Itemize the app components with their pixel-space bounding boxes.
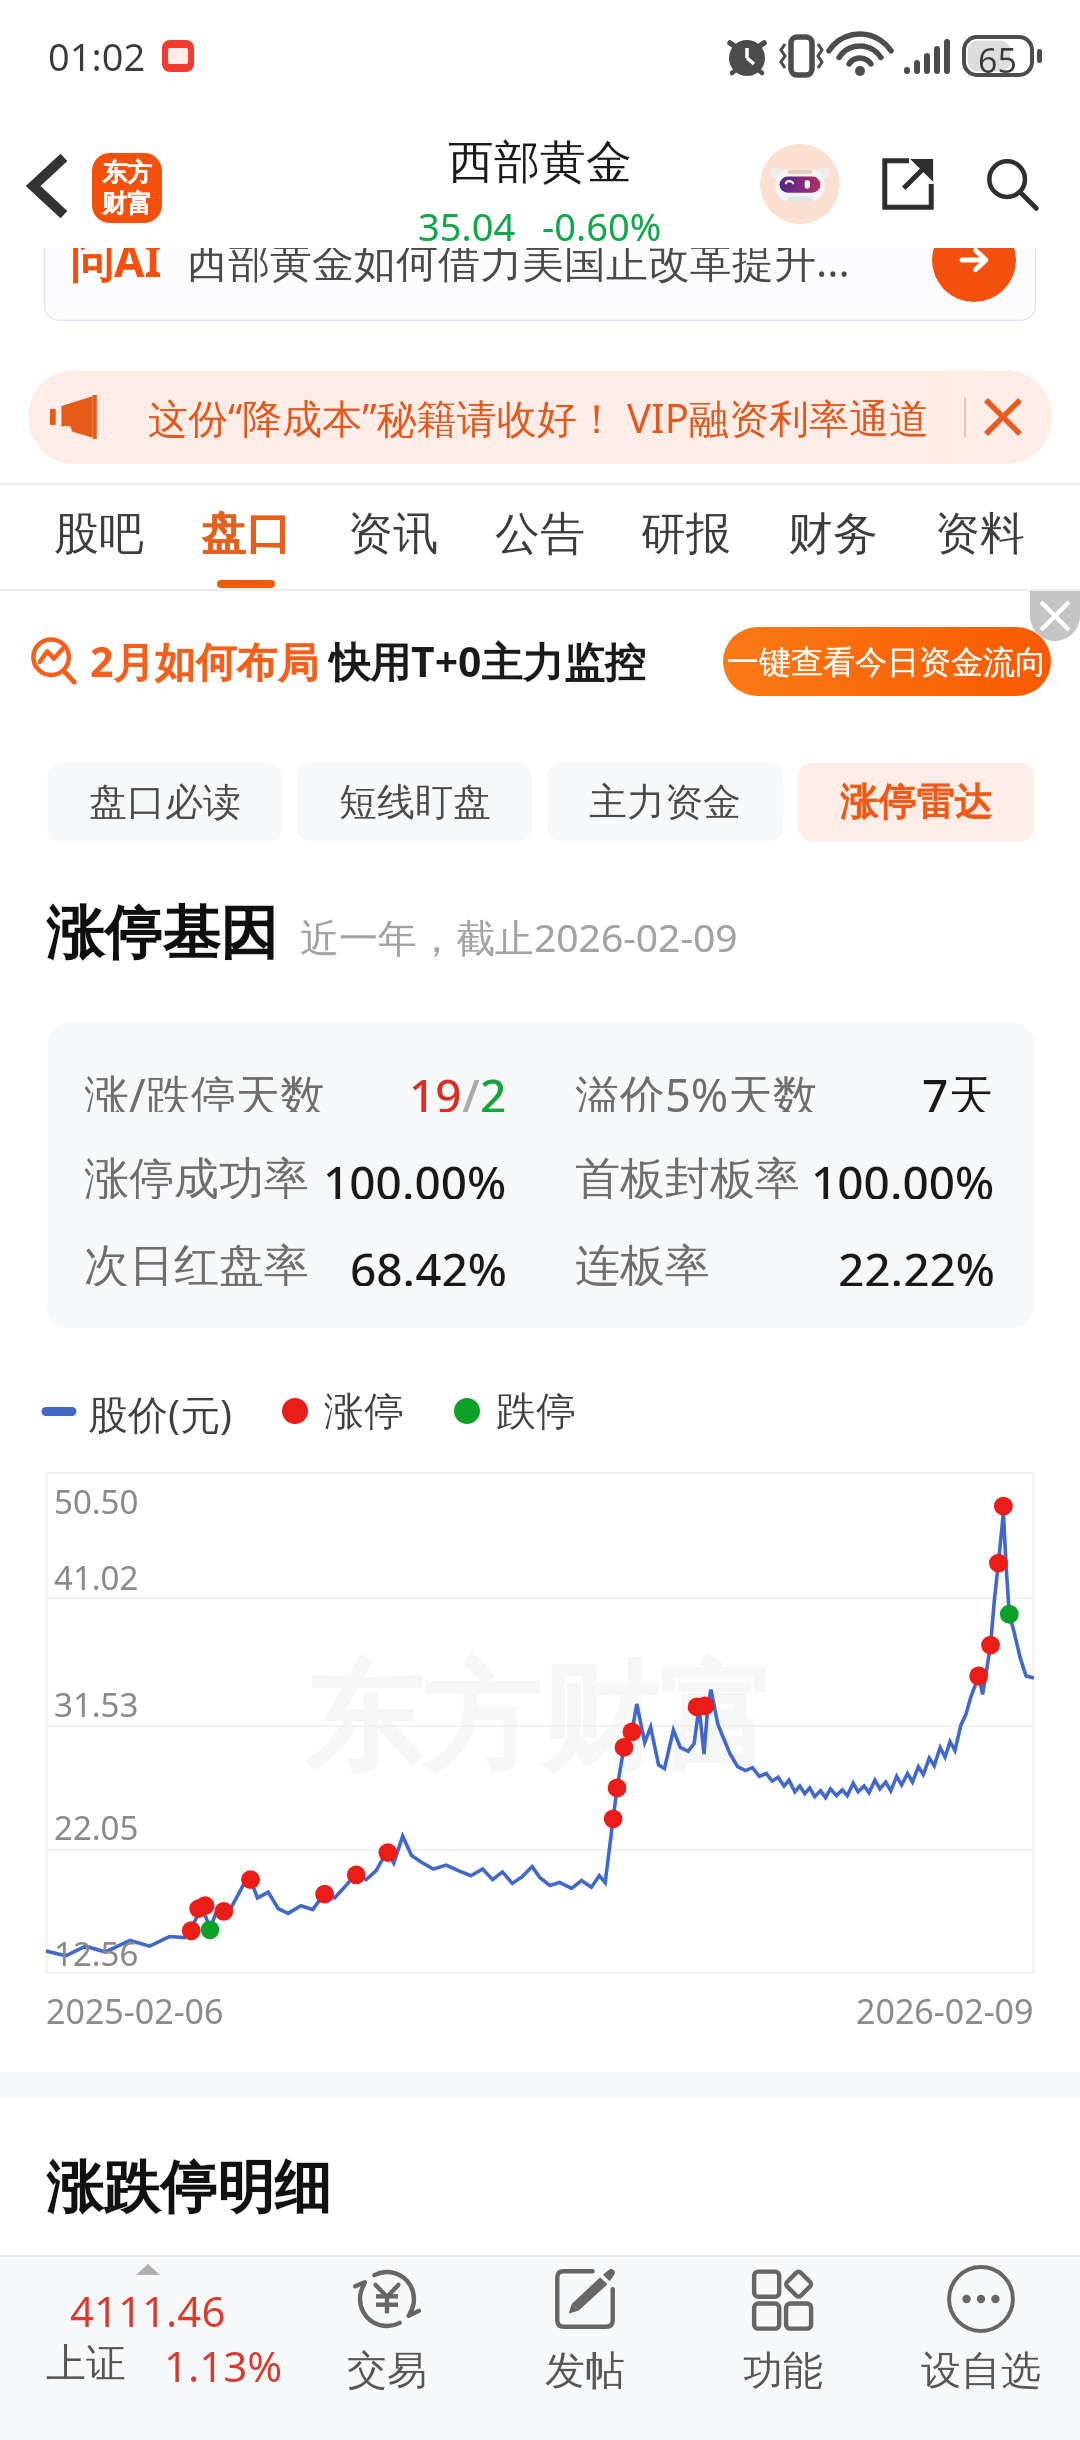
staticText: 01:02 bbox=[48, 30, 146, 82]
staticText: 2025-02-06 bbox=[46, 1988, 224, 2034]
button[interactable]: 资料 bbox=[935, 483, 1025, 591]
staticText: 主力资金 bbox=[589, 778, 741, 826]
staticText: 4111.46 bbox=[70, 2282, 226, 2339]
staticText: 溢价5%天数 bbox=[575, 1064, 819, 1112]
button[interactable]: 这份“降成本”秘籍请收好！ VIP融资利率通道 bbox=[28, 370, 1052, 464]
button[interactable]: Close banner bbox=[976, 390, 1030, 444]
button[interactable]: AI assistant bbox=[760, 144, 840, 224]
button[interactable]: 设自选 bbox=[882, 2255, 1080, 2440]
staticText: 41.02 bbox=[54, 1555, 139, 1600]
staticText: 68.42% bbox=[350, 1238, 507, 1286]
button[interactable]: 4111.46 bbox=[0, 2255, 288, 2440]
staticText: 35.04 bbox=[418, 200, 516, 252]
staticText: 50.50 bbox=[54, 1479, 139, 1524]
staticText: 上证 bbox=[46, 2338, 126, 2388]
staticText: 西部黄金 bbox=[448, 134, 632, 192]
staticText: 近一年，截止2026-02-09 bbox=[300, 910, 738, 963]
staticText: 股价(元) bbox=[88, 1386, 232, 1436]
button[interactable]: 股吧 bbox=[54, 483, 144, 591]
staticText: 盘口 bbox=[201, 506, 291, 563]
staticText: 功能 bbox=[743, 2345, 823, 2395]
staticText: 涨/跌停天数 bbox=[84, 1064, 326, 1112]
staticText: 2026-02-09 bbox=[856, 1988, 1034, 2034]
staticText: 连板率 bbox=[575, 1238, 710, 1286]
button[interactable]: 交易 bbox=[288, 2255, 486, 2440]
button[interactable]: 盘口必读 bbox=[47, 763, 282, 841]
staticText: 财富 bbox=[102, 188, 152, 219]
button[interactable]: 问AI bbox=[44, 199, 1036, 321]
staticText: 7天 bbox=[922, 1064, 995, 1112]
staticText: 资料 bbox=[935, 506, 1025, 563]
staticText: 1.13% bbox=[164, 2337, 283, 2394]
staticText: / bbox=[462, 1064, 480, 1112]
staticText: 快用T+0主力监控 bbox=[329, 633, 646, 689]
button[interactable]: Back bbox=[6, 146, 86, 226]
staticText: 首板封板率 bbox=[575, 1151, 800, 1199]
staticText: 盘口必读 bbox=[89, 778, 241, 826]
staticText: 22.22% bbox=[838, 1238, 995, 1286]
button[interactable]: 短线盯盘 bbox=[297, 763, 532, 841]
staticText: 19 bbox=[409, 1064, 462, 1112]
staticText: 东方 bbox=[102, 157, 152, 188]
staticText: 2月如何布局 bbox=[90, 633, 319, 689]
staticText: 100.00% bbox=[811, 1151, 995, 1199]
button[interactable]: 财务 bbox=[788, 483, 878, 591]
button[interactable]: 一键查看今日资金流向 bbox=[723, 627, 1051, 696]
staticText: 2 bbox=[480, 1064, 507, 1112]
button[interactable]: East Money bbox=[92, 153, 162, 223]
staticText: 涨停 bbox=[324, 1386, 404, 1436]
button[interactable]: 涨停雷达 bbox=[798, 763, 1034, 841]
staticText: 涨停成功率 bbox=[84, 1151, 309, 1199]
staticText: 涨跌停明细 bbox=[46, 2152, 331, 2224]
staticText: 股吧 bbox=[54, 506, 144, 563]
staticText: 跌停 bbox=[496, 1386, 576, 1436]
staticText: 资讯 bbox=[348, 506, 438, 563]
staticText: 这份“降成本”秘籍请收好！ VIP融资利率通道 bbox=[148, 390, 929, 445]
staticText: 65 bbox=[978, 37, 1017, 83]
button[interactable]: 主力资金 bbox=[547, 763, 783, 841]
button[interactable]: Share bbox=[868, 144, 948, 224]
staticText: 涨停雷达 bbox=[840, 778, 992, 826]
staticText: 涨停基因 bbox=[46, 897, 278, 970]
staticText: 100.00% bbox=[323, 1151, 507, 1199]
staticText: 22.05 bbox=[54, 1805, 139, 1850]
staticText: 财务 bbox=[788, 506, 878, 563]
staticText: 问AI bbox=[70, 230, 162, 290]
button[interactable]: 公告 bbox=[495, 483, 585, 591]
button[interactable]: Close ad bbox=[1030, 591, 1080, 641]
button[interactable]: 盘口 bbox=[201, 483, 291, 591]
button[interactable]: 研报 bbox=[641, 483, 731, 591]
staticText: 西部黄金如何借力美国正改革提升... bbox=[186, 232, 850, 289]
staticText: 31.53 bbox=[54, 1682, 139, 1727]
staticText: 12.56 bbox=[54, 1931, 139, 1976]
staticText: -0.60% bbox=[542, 200, 662, 252]
staticText: 东方财富 bbox=[304, 1645, 776, 1794]
button[interactable]: 资讯 bbox=[348, 483, 438, 591]
button[interactable]: Search bbox=[972, 144, 1052, 224]
staticText: 研报 bbox=[641, 506, 731, 563]
staticText: 次日红盘率 bbox=[84, 1238, 309, 1286]
staticText: 交易 bbox=[347, 2345, 427, 2395]
staticText: 公告 bbox=[495, 506, 585, 563]
button[interactable]: 发帖 bbox=[486, 2255, 684, 2440]
button[interactable]: 功能 bbox=[684, 2255, 882, 2440]
staticText: 一键查看今日资金流向 bbox=[727, 642, 1047, 682]
staticText: 设自选 bbox=[921, 2345, 1041, 2395]
staticText: 短线盯盘 bbox=[339, 778, 491, 826]
staticText: 发帖 bbox=[545, 2345, 625, 2395]
